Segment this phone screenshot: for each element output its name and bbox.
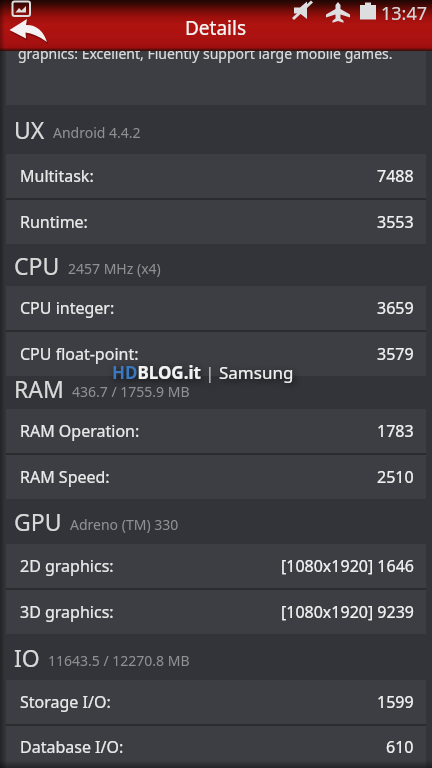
- staticText: CPU: [14, 250, 60, 281]
- staticText: CPU integer:: [20, 297, 115, 319]
- staticText: 2510: [377, 466, 414, 488]
- staticText: 2D graphics:: [20, 555, 114, 577]
- staticText: 13:47: [381, 1, 428, 26]
- button[interactable]: Database I/O:: [6, 726, 426, 768]
- staticText: 1783: [377, 420, 414, 442]
- staticText: [1080x1920] 1646: [281, 555, 414, 577]
- staticText: 7488: [377, 165, 414, 187]
- staticText: HDBLOG.it | Samsung: [112, 361, 294, 384]
- staticText: graphics: Excellent, Fluently support la…: [18, 51, 393, 63]
- staticText: 3553: [377, 211, 414, 233]
- button[interactable]: 3D graphics:: [6, 590, 426, 634]
- button[interactable]: Storage I/O:: [6, 680, 426, 724]
- staticText: RAM: [14, 373, 64, 404]
- button[interactable]: [0, 12, 56, 51]
- staticText: RAM Operation:: [20, 420, 140, 442]
- staticText: UX: [14, 114, 45, 145]
- staticText: IO: [14, 642, 40, 673]
- staticText: Adreno (TM) 330: [70, 515, 179, 534]
- button[interactable]: Runtime:: [6, 200, 426, 244]
- staticText: 3D graphics:: [20, 601, 114, 623]
- button[interactable]: RAM Speed:: [6, 455, 426, 499]
- staticText: Details: [185, 15, 247, 41]
- button[interactable]: CPU integer:: [6, 286, 426, 330]
- staticText: Multitask:: [20, 165, 94, 187]
- button[interactable]: RAM Operation:: [6, 409, 426, 453]
- staticText: 1599: [377, 691, 414, 713]
- button[interactable]: Multitask:: [6, 154, 426, 198]
- staticText: Storage I/O:: [20, 691, 111, 713]
- staticText: GPU: [14, 506, 62, 537]
- staticText: Runtime:: [20, 211, 88, 233]
- staticText: [1080x1920] 9239: [281, 601, 414, 623]
- staticText: 3579: [377, 343, 414, 365]
- staticText: CPU float-point:: [20, 343, 139, 365]
- staticText: 610: [386, 736, 414, 758]
- button[interactable]: 2D graphics:: [6, 544, 426, 588]
- staticText: 3659: [377, 297, 414, 319]
- staticText: Android 4.4.2: [53, 123, 141, 142]
- staticText: Database I/O:: [20, 736, 124, 758]
- button[interactable]: CPU float-point:: [6, 332, 426, 376]
- staticText: 436.7 / 1755.9 MB: [72, 382, 190, 401]
- staticText: 11643.5 / 12270.8 MB: [48, 651, 190, 670]
- staticText: RAM Speed:: [20, 466, 110, 488]
- staticText: 2457 MHz (x4): [68, 259, 161, 278]
